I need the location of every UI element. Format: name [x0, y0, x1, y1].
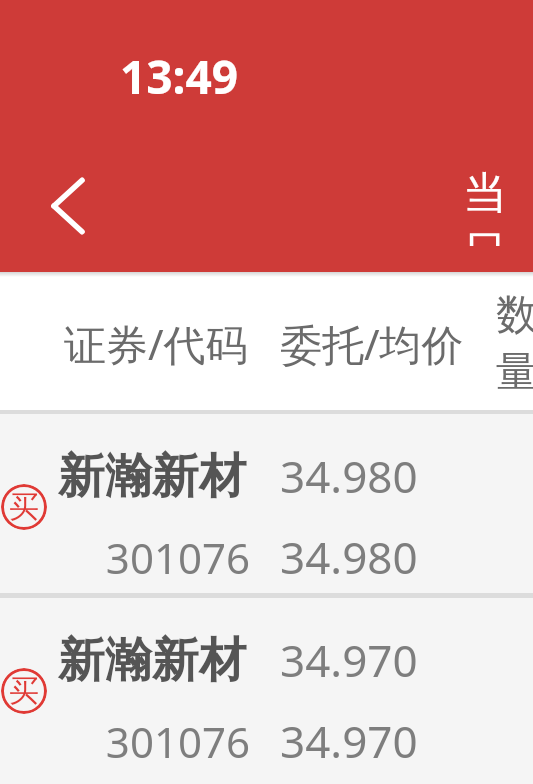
staticText: 34.980 — [280, 446, 440, 506]
staticText: 当日 — [463, 166, 533, 246]
staticText: 买 — [9, 672, 39, 710]
staticText: 34.970 — [280, 630, 440, 690]
button[interactable]: 买 — [0, 598, 533, 784]
button[interactable]: 当日 — [463, 166, 533, 246]
staticText: 34.970 — [280, 711, 440, 771]
staticText: 新瀚新材 — [58, 631, 266, 690]
staticText: 数量 — [496, 289, 533, 399]
staticText: 新瀚新材 — [58, 447, 266, 506]
staticText: 买 — [9, 488, 39, 526]
button[interactable]: 买 — [0, 414, 533, 593]
staticText: 34.980 — [280, 527, 440, 587]
staticText: 301076 — [58, 529, 250, 586]
staticText: 301076 — [58, 713, 250, 770]
button[interactable]: Back — [20, 160, 116, 252]
staticText: 13:49 — [120, 45, 239, 108]
staticText: 证券/代码 — [64, 315, 248, 372]
staticText: 委托/均价 — [280, 315, 464, 372]
